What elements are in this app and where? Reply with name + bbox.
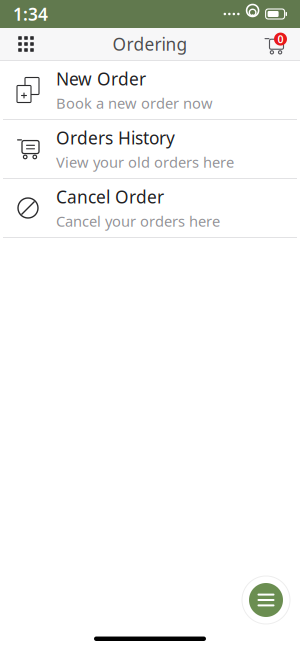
button[interactable]: Cancel Order <box>0 179 300 238</box>
button[interactable]: Menu <box>4 27 48 61</box>
staticText: Cancel your orders here <box>56 211 220 231</box>
staticText: New Order <box>56 67 146 90</box>
staticText: Cancel Order <box>56 185 164 208</box>
staticText: 1:34 <box>13 2 48 25</box>
staticText: 0 <box>277 32 283 46</box>
button[interactable]: Menu <box>238 572 294 628</box>
staticText: View your old orders here <box>56 152 234 172</box>
staticText: Book a new order now <box>56 93 213 113</box>
button[interactable]: New Order <box>0 61 300 120</box>
button[interactable]: Orders History <box>0 120 300 179</box>
staticText: Ordering <box>112 32 187 55</box>
staticText: Orders History <box>56 126 175 149</box>
button[interactable]: Cart, 0 items <box>252 27 296 61</box>
